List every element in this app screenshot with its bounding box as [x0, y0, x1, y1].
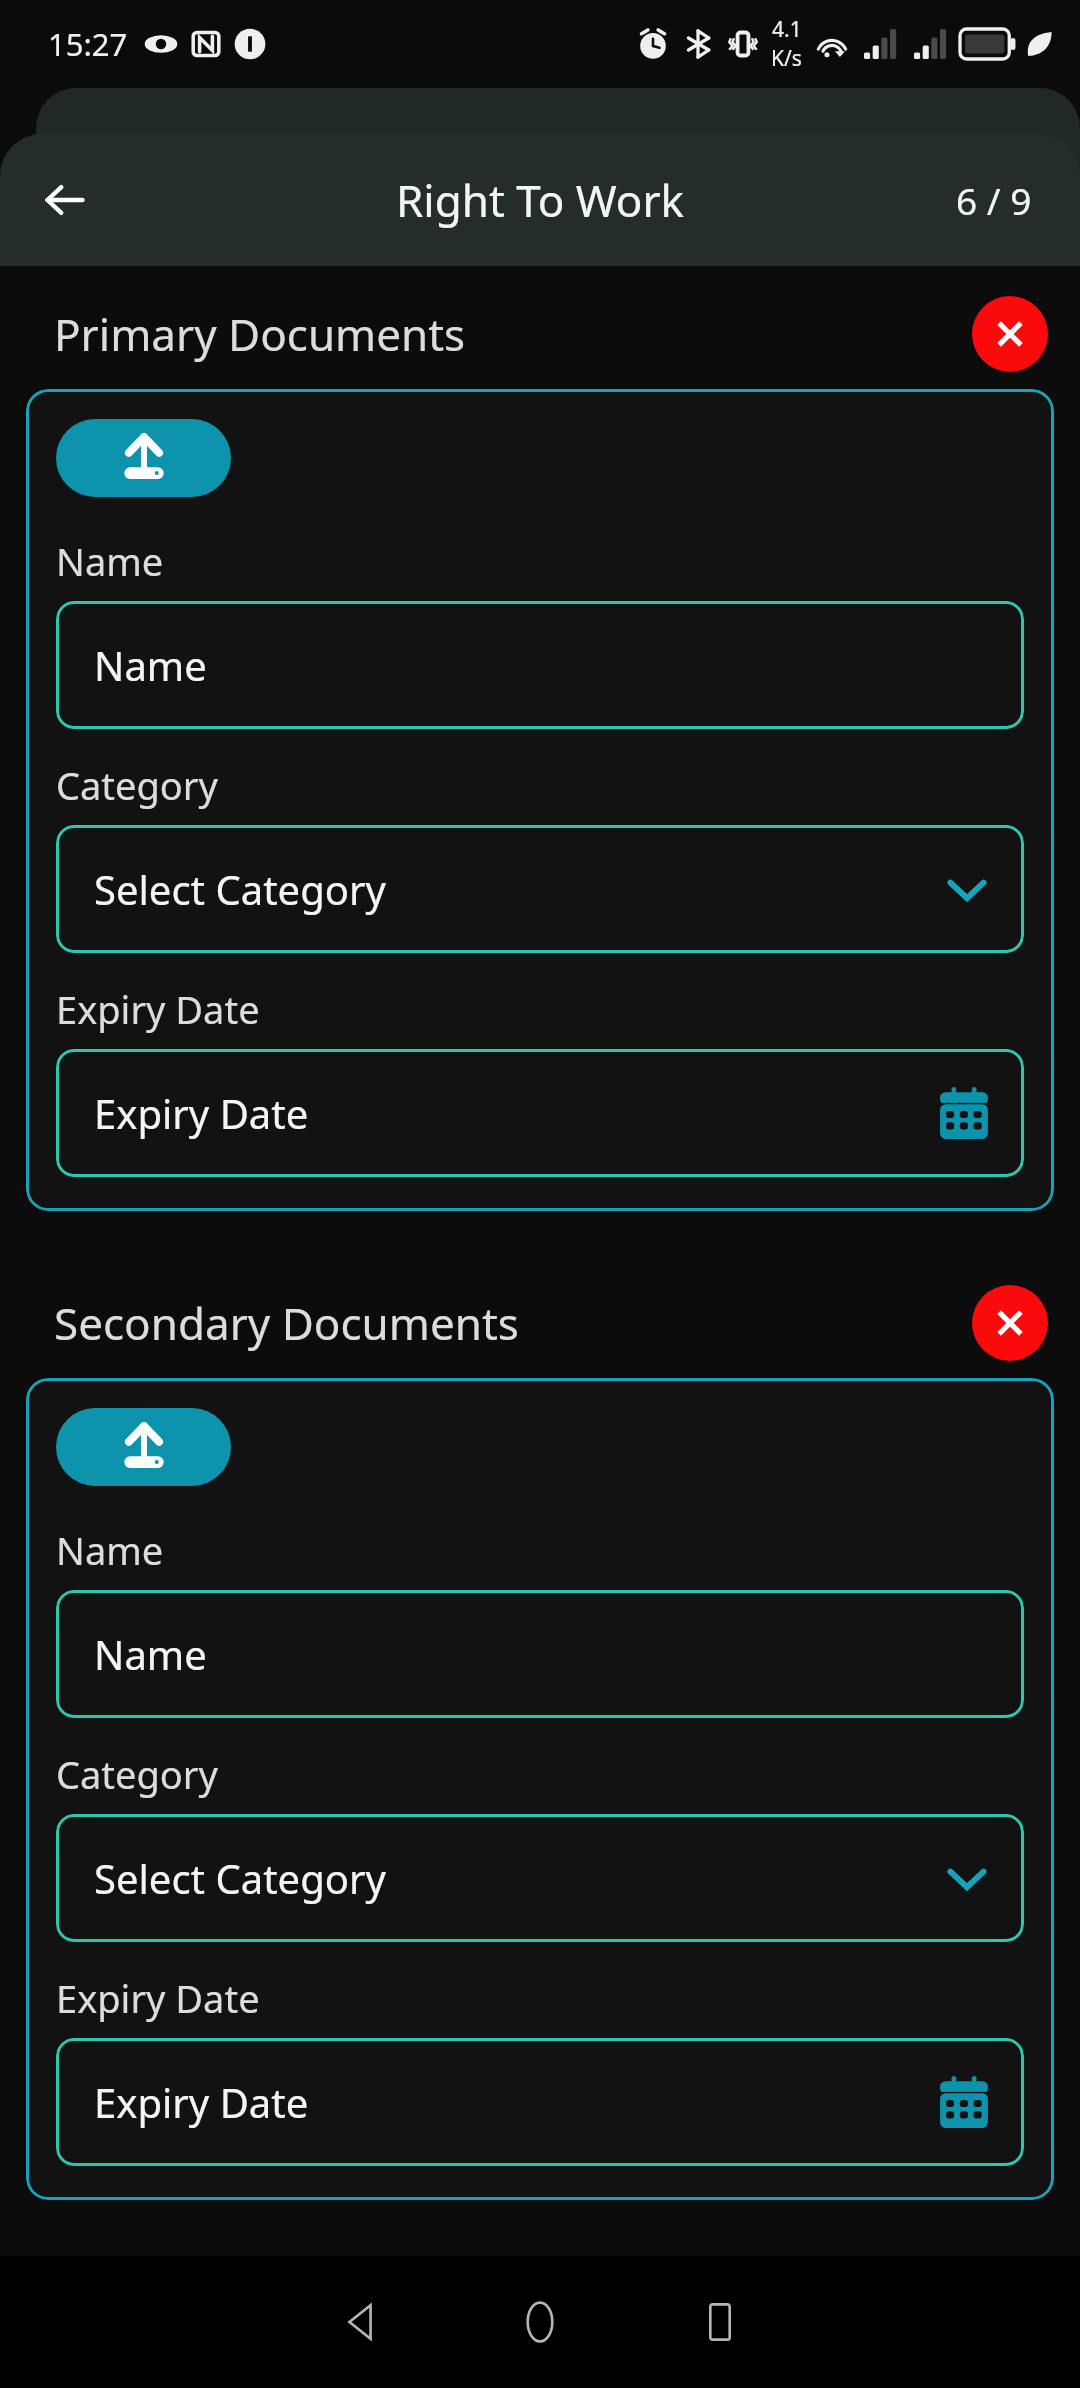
- button[interactable]: Name: [56, 601, 1024, 729]
- button[interactable]: Name: [56, 1590, 1024, 1718]
- staticText: Name: [56, 535, 164, 587]
- staticText: 15:27: [48, 23, 128, 65]
- staticText: Right To Work: [396, 170, 685, 230]
- staticText: Name: [94, 638, 207, 692]
- button[interactable]: Upload document: [56, 1408, 231, 1486]
- button[interactable]: Select Category: [56, 825, 1024, 953]
- staticText: K/s: [771, 44, 802, 73]
- button[interactable]: Remove section: [972, 1285, 1048, 1361]
- staticText: Name: [94, 1627, 207, 1681]
- staticText: Expiry Date: [94, 2075, 309, 2129]
- button[interactable]: Back: [26, 161, 104, 239]
- staticText: Select Category: [94, 1851, 386, 1905]
- button[interactable]: Upload document: [56, 419, 231, 497]
- button[interactable]: Select Category: [56, 1814, 1024, 1942]
- button[interactable]: Back: [270, 2256, 450, 2388]
- button[interactable]: Home: [450, 2256, 630, 2388]
- button[interactable]: Pick expiry date: [56, 1049, 1024, 1177]
- staticText: Secondary Documents: [54, 1293, 519, 1353]
- button[interactable]: Recents: [630, 2256, 810, 2388]
- staticText: Expiry Date: [94, 1086, 309, 1140]
- staticText: Category: [56, 759, 218, 811]
- staticText: 6 / 9: [956, 175, 1032, 225]
- button[interactable]: Remove section: [972, 296, 1048, 372]
- staticText: Select Category: [94, 862, 386, 916]
- staticText: 4.1: [772, 15, 802, 44]
- staticText: Category: [56, 1748, 218, 1800]
- button[interactable]: Pick expiry date: [56, 2038, 1024, 2166]
- staticText: Expiry Date: [56, 1972, 260, 2024]
- staticText: Name: [56, 1524, 164, 1576]
- staticText: Expiry Date: [56, 983, 260, 1035]
- staticText: Primary Documents: [54, 304, 466, 364]
